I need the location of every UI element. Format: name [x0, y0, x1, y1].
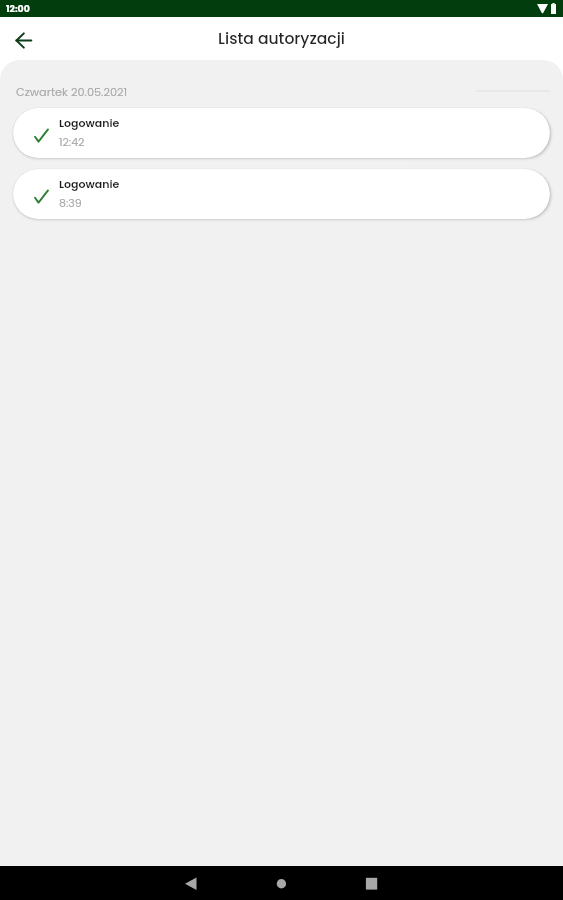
- button[interactable]: Logowanie: [13, 108, 550, 158]
- staticText: Logowanie: [59, 115, 120, 130]
- button[interactable]: Back: [7, 24, 39, 56]
- staticText: Czwartek 20.05.2021: [16, 84, 128, 100]
- staticText: 8:39: [59, 195, 82, 210]
- button[interactable]: Logowanie: [13, 169, 550, 219]
- staticText: Logowanie: [59, 176, 120, 191]
- staticText: 12:00: [6, 2, 30, 15]
- staticText: Lista autoryzacji: [218, 28, 345, 50]
- staticText: 12:42: [59, 134, 85, 149]
